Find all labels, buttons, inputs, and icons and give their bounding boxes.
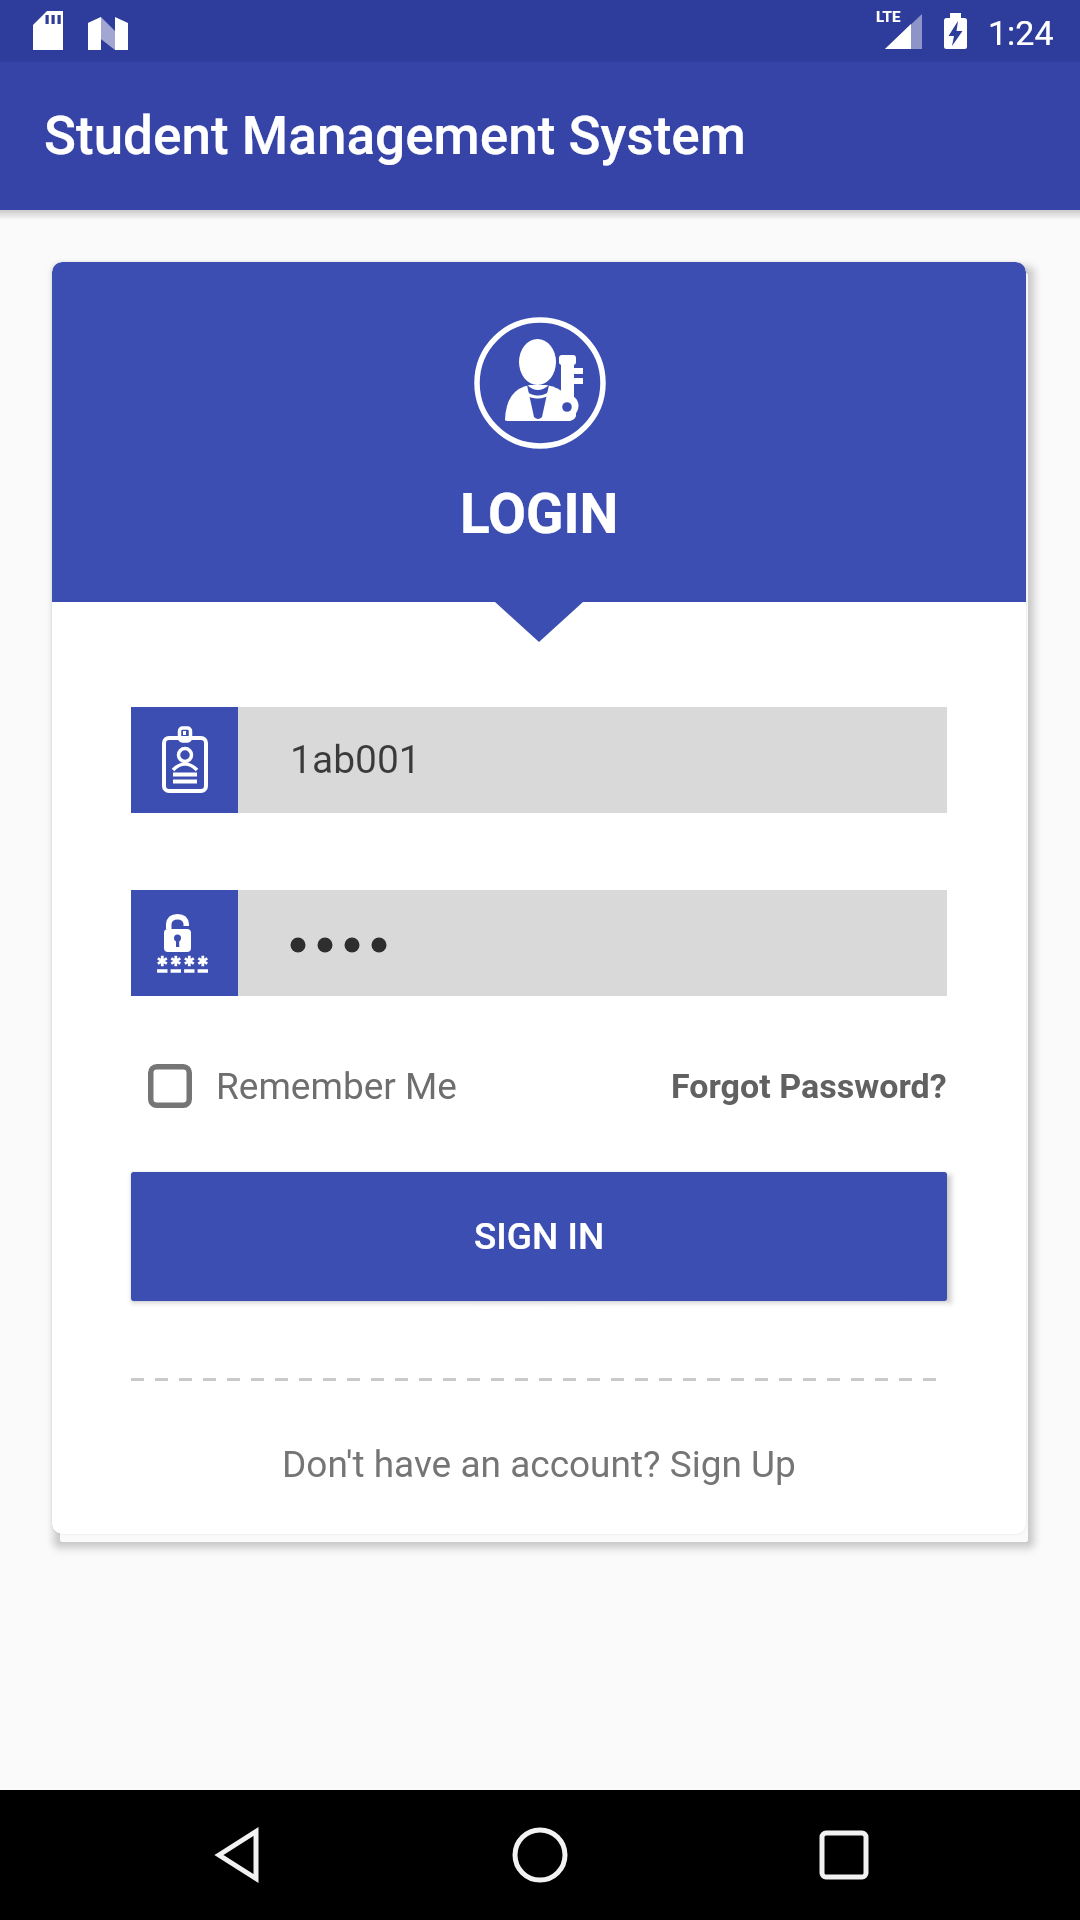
button[interactable]: Don't have an account? Sign Up [282, 1443, 796, 1486]
staticText: Remember Me [216, 1065, 457, 1108]
staticText: LTE [876, 8, 901, 26]
button[interactable] [720, 1790, 1080, 1920]
button[interactable] [131, 890, 947, 996]
button[interactable]: Forgot Password? [671, 1066, 947, 1106]
staticText: SIGN IN [474, 1215, 605, 1258]
button[interactable] [360, 1790, 720, 1920]
button[interactable]: SIGN IN [131, 1172, 947, 1301]
staticText: Student Management System [44, 105, 746, 167]
staticText: LOGIN [460, 482, 619, 546]
staticText: 1ab001 [290, 737, 421, 783]
button[interactable] [0, 1790, 360, 1920]
button[interactable]: Remember Me [131, 1064, 457, 1108]
staticText: 1:24 [988, 13, 1054, 53]
button[interactable]: 1ab001 [131, 707, 947, 813]
